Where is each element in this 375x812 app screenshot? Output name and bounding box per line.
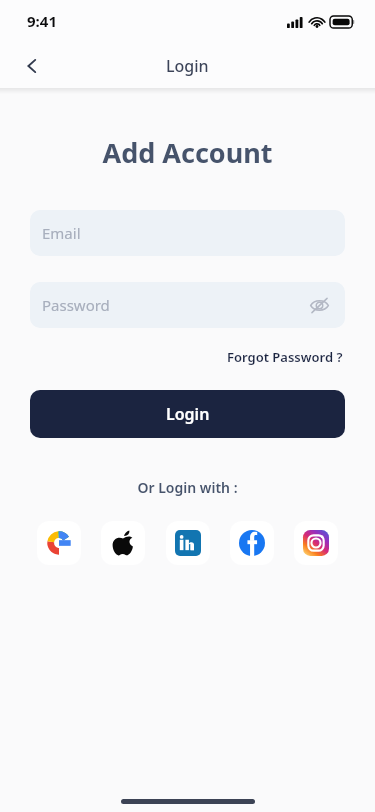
staticText: Add Account xyxy=(0,134,375,171)
button[interactable]: Email xyxy=(30,210,345,256)
staticText: 9:41 xyxy=(27,11,57,31)
button[interactable]: Sign in with Instagram xyxy=(294,521,338,565)
button[interactable]: Sign in with Apple xyxy=(101,521,145,565)
button[interactable]: Sign in with LinkedIn xyxy=(166,521,210,565)
staticText: Or Login with : xyxy=(0,478,375,497)
button[interactable]: Back xyxy=(12,46,52,86)
button[interactable]: Show password xyxy=(305,291,333,319)
staticText: Login xyxy=(166,55,209,77)
button[interactable]: Sign in with Facebook xyxy=(230,521,274,565)
button[interactable]: Forgot Password ? xyxy=(225,345,345,369)
staticText: Login xyxy=(166,403,210,425)
staticText: Password xyxy=(42,295,110,315)
button[interactable]: Login xyxy=(30,390,345,438)
button[interactable]: Password xyxy=(30,282,345,328)
staticText: Email xyxy=(42,223,81,243)
button[interactable]: Sign in with Google xyxy=(37,521,81,565)
staticText: Forgot Password ? xyxy=(227,348,343,366)
